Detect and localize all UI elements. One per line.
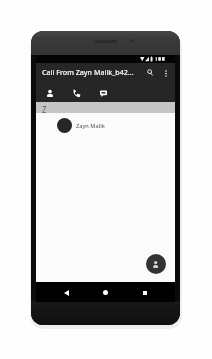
staticText: Zayn Malik: [76, 122, 105, 130]
button[interactable]: Messages: [90, 81, 117, 102]
staticText: Z: [42, 104, 47, 115]
button[interactable]: Search: [143, 66, 156, 79]
button[interactable]: Contacts: [36, 81, 63, 102]
button[interactable]: Calls: [63, 81, 90, 102]
button[interactable]: More options: [160, 67, 172, 79]
staticText: Call From Zayn Malik_b42...: [42, 67, 134, 77]
button[interactable]: Add contact: [146, 254, 166, 274]
button[interactable]: Back: [60, 286, 73, 299]
button[interactable]: Home: [99, 286, 112, 299]
button[interactable]: Zayn Malik: [36, 113, 175, 138]
button[interactable]: Recents: [138, 286, 151, 299]
